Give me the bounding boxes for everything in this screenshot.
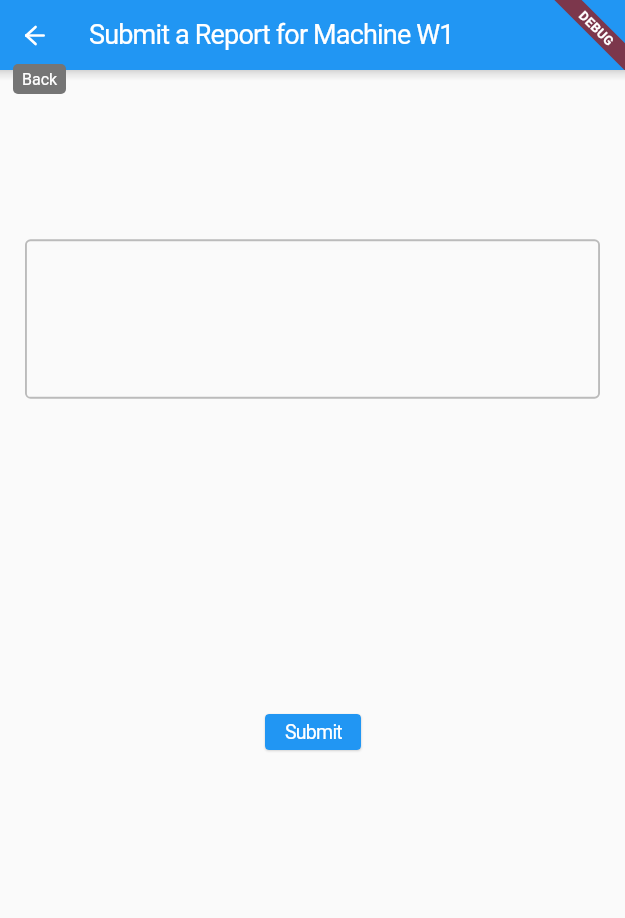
button[interactable]: Back — [11, 11, 59, 59]
button[interactable]: Submit — [265, 714, 361, 750]
staticText: Submit a Report for Machine W1 — [89, 19, 454, 51]
staticText: Submit — [285, 721, 342, 744]
button[interactable]: Report details text field — [25, 239, 600, 399]
staticText: Back — [22, 70, 58, 89]
